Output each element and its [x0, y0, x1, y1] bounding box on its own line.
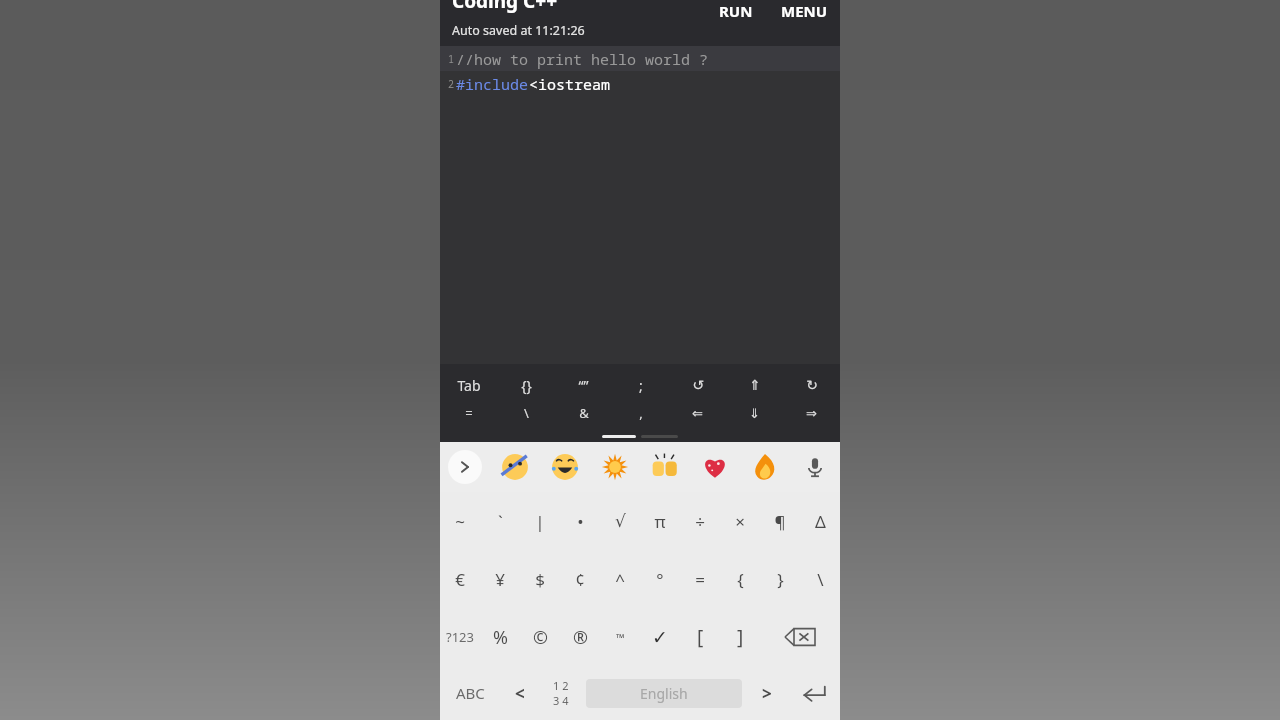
staticText: |: [535, 510, 545, 533]
staticText: [: [697, 624, 704, 650]
button[interactable]: Tab: [440, 372, 498, 398]
button[interactable]: 1 2: [540, 666, 582, 720]
staticText: {: [737, 568, 744, 591]
button[interactable]: MENU: [773, 0, 836, 25]
button[interactable]: ¶: [760, 492, 800, 550]
button[interactable]: “”: [555, 372, 612, 398]
staticText: ⇐: [692, 406, 703, 421]
button[interactable]: ™: [600, 608, 640, 666]
button[interactable]: π: [640, 492, 680, 550]
button[interactable]: Emoji: [490, 442, 540, 492]
button[interactable]: ;: [612, 372, 669, 398]
button[interactable]: Enter: [788, 666, 840, 720]
staticText: MENU: [781, 1, 828, 21]
button[interactable]: Emoji: [740, 442, 790, 492]
button[interactable]: |: [520, 492, 560, 550]
button[interactable]: Previous: [500, 666, 540, 720]
staticText: ¥: [495, 568, 505, 591]
staticText: 1 2: [553, 678, 569, 693]
staticText: <iostream: [529, 74, 611, 94]
staticText: √: [615, 511, 626, 531]
button[interactable]: ✓: [640, 608, 680, 666]
staticText: ✓: [652, 626, 668, 648]
button[interactable]: ?123: [440, 608, 480, 666]
staticText: “”: [578, 376, 589, 395]
staticText: ¶: [774, 510, 786, 533]
button[interactable]: ~: [440, 492, 480, 550]
button[interactable]: $: [520, 550, 560, 608]
button[interactable]: {: [720, 550, 760, 608]
button[interactable]: RUN: [711, 0, 761, 25]
staticText: Tab: [457, 376, 481, 395]
button[interactable]: English: [586, 679, 742, 708]
button[interactable]: ,: [612, 400, 669, 426]
button[interactable]: €: [440, 550, 480, 608]
button[interactable]: ⇐: [669, 400, 726, 426]
staticText: ⇒: [806, 406, 817, 421]
staticText: %: [493, 625, 508, 650]
button[interactable]: ⇒: [783, 400, 840, 426]
button[interactable]: &: [555, 400, 612, 426]
button[interactable]: ⇓: [726, 400, 783, 426]
button[interactable]: Emoji: [640, 442, 690, 492]
button[interactable]: Delete: [760, 608, 840, 666]
button[interactable]: \: [498, 400, 555, 426]
button[interactable]: ×: [720, 492, 760, 550]
button[interactable]: =: [680, 550, 720, 608]
staticText: Auto saved at 11:21:26: [452, 22, 585, 39]
staticText: ,: [639, 404, 643, 422]
button[interactable]: ÷: [680, 492, 720, 550]
staticText: \: [524, 404, 529, 422]
button[interactable]: Coding C++: [452, 0, 557, 14]
button[interactable]: ¢: [560, 550, 600, 608]
staticText: ↺: [692, 377, 704, 393]
button[interactable]: ]: [720, 608, 760, 666]
button[interactable]: ABC: [440, 666, 500, 720]
button[interactable]: ©: [520, 608, 560, 666]
button[interactable]: 1: [440, 46, 840, 71]
button[interactable]: ↻: [783, 372, 840, 398]
staticText: =: [695, 568, 705, 591]
staticText: Δ: [815, 510, 826, 533]
staticText: ~: [455, 510, 465, 533]
button[interactable]: [: [680, 608, 720, 666]
button[interactable]: •: [560, 492, 600, 550]
button[interactable]: Emoji: [540, 442, 590, 492]
button[interactable]: }: [760, 550, 800, 608]
button[interactable]: %: [480, 608, 520, 666]
staticText: ↻: [806, 377, 818, 393]
staticText: &: [579, 404, 589, 422]
staticText: ;: [639, 376, 643, 395]
button[interactable]: `: [480, 492, 520, 550]
button[interactable]: Emoji: [590, 442, 640, 492]
staticText: \: [817, 568, 824, 591]
button[interactable]: Voice input: [790, 442, 840, 492]
staticText: ?123: [446, 628, 474, 646]
button[interactable]: √: [600, 492, 640, 550]
button[interactable]: ¥: [480, 550, 520, 608]
button[interactable]: {}: [498, 372, 555, 398]
staticText: English: [640, 684, 688, 703]
staticText: 3 4: [553, 693, 569, 708]
staticText: €: [455, 568, 465, 591]
button[interactable]: ^: [600, 550, 640, 608]
button[interactable]: Next: [746, 666, 788, 720]
staticText: ⇓: [749, 406, 760, 421]
button[interactable]: ⇑: [726, 372, 783, 398]
staticText: {}: [521, 376, 532, 395]
button[interactable]: ®: [560, 608, 600, 666]
button[interactable]: 2: [440, 71, 840, 96]
staticText: π: [654, 510, 666, 533]
staticText: RUN: [719, 1, 753, 21]
button[interactable]: ↺: [669, 372, 726, 398]
staticText: 2: [448, 77, 454, 91]
button[interactable]: Expand: [440, 442, 490, 492]
button[interactable]: Emoji: [690, 442, 740, 492]
button[interactable]: \: [800, 550, 840, 608]
staticText: #include: [456, 74, 529, 94]
button[interactable]: =: [440, 400, 498, 426]
staticText: ^: [615, 568, 625, 591]
button[interactable]: °: [640, 550, 680, 608]
staticText: >: [762, 682, 772, 705]
button[interactable]: Δ: [800, 492, 840, 550]
